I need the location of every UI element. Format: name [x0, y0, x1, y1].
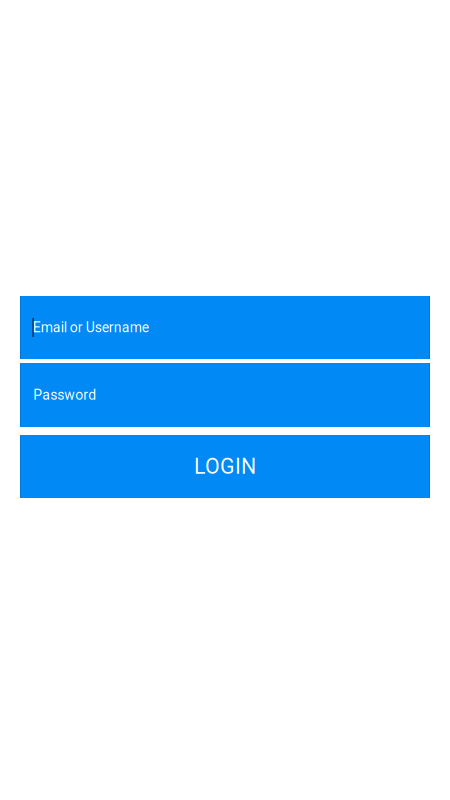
button[interactable]: Email or Username — [20, 296, 430, 359]
button[interactable]: Password — [20, 363, 430, 427]
staticText: Email or Username — [33, 319, 149, 336]
staticText: LOGIN — [194, 454, 256, 479]
staticText: Password — [33, 387, 96, 403]
button[interactable]: LOGIN — [20, 435, 430, 498]
